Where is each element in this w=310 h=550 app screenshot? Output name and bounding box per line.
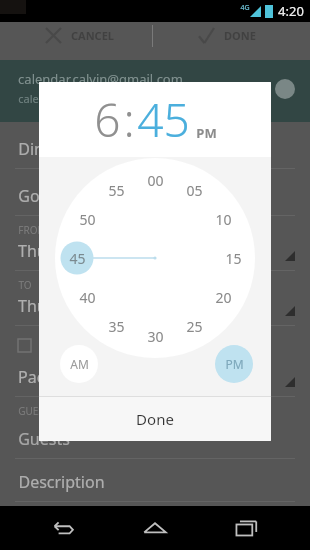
staticText: All day [39, 336, 83, 355]
button[interactable]: Recents [230, 511, 264, 545]
button[interactable]: 50 [74, 209, 100, 229]
staticText: 10 [215, 210, 232, 229]
button[interactable]: 6 [94, 88, 121, 151]
staticText: REPETITION [18, 509, 75, 523]
staticText: PM [225, 356, 244, 372]
staticText: AM [70, 356, 89, 372]
button[interactable]: 45 [137, 88, 190, 151]
staticText: 40 [79, 288, 96, 307]
staticText: DONE [224, 28, 256, 43]
button[interactable]: 40 [74, 287, 100, 307]
button[interactable]: PM [215, 345, 253, 383]
button[interactable]: 45 [64, 248, 90, 268]
button[interactable]: Colour [272, 76, 298, 102]
staticText: : [123, 88, 135, 151]
staticText: 4:20 [278, 2, 304, 20]
button[interactable]: DONE [195, 22, 260, 49]
staticText: Thu, Jan 16, 2014 [18, 240, 146, 262]
staticText: Google Office [18, 185, 121, 207]
staticText: cale [18, 91, 39, 106]
staticText: Done [136, 409, 174, 429]
staticText: 05 [186, 181, 203, 200]
staticText: FROM [18, 223, 47, 237]
staticText: 15 [225, 249, 242, 268]
button[interactable]: 00 [142, 170, 168, 190]
staticText: 4G [240, 3, 250, 13]
staticText: 45 [69, 249, 86, 268]
staticText: Pacific Time [18, 366, 107, 388]
button[interactable]: 15 [220, 248, 246, 268]
staticText: Guests [18, 428, 70, 450]
staticText: 55 [108, 181, 125, 200]
button[interactable]: 35 [103, 316, 129, 336]
button[interactable]: 25 [181, 316, 207, 336]
staticText: Thu, Jan 16, 2014 [18, 295, 146, 317]
button[interactable]: 10 [210, 209, 236, 229]
button[interactable]: 55 [103, 180, 129, 200]
staticText: TO [18, 278, 32, 292]
staticText: calendar.calvin@gmail.com [18, 70, 183, 88]
staticText: 20 [215, 288, 232, 307]
button[interactable]: 20 [210, 287, 236, 307]
button[interactable]: Done [39, 397, 271, 441]
staticText: 25 [186, 317, 203, 336]
button[interactable]: Home [138, 511, 172, 545]
button[interactable]: 30 [142, 326, 168, 346]
staticText: 50 [79, 210, 96, 229]
staticText: 35 [108, 317, 125, 336]
button[interactable]: 05 [181, 180, 207, 200]
button[interactable]: AM [60, 345, 98, 383]
staticText: 00 [147, 171, 164, 190]
staticText: Dinner with friends [18, 138, 163, 160]
button[interactable]: CANCEL [42, 22, 118, 49]
button[interactable]: Back [46, 511, 80, 545]
staticText: GUESTS [18, 404, 55, 418]
staticText: PM [196, 124, 217, 142]
staticText: 30 [147, 327, 164, 346]
staticText: CANCEL [71, 28, 114, 43]
staticText: Description [18, 471, 105, 493]
